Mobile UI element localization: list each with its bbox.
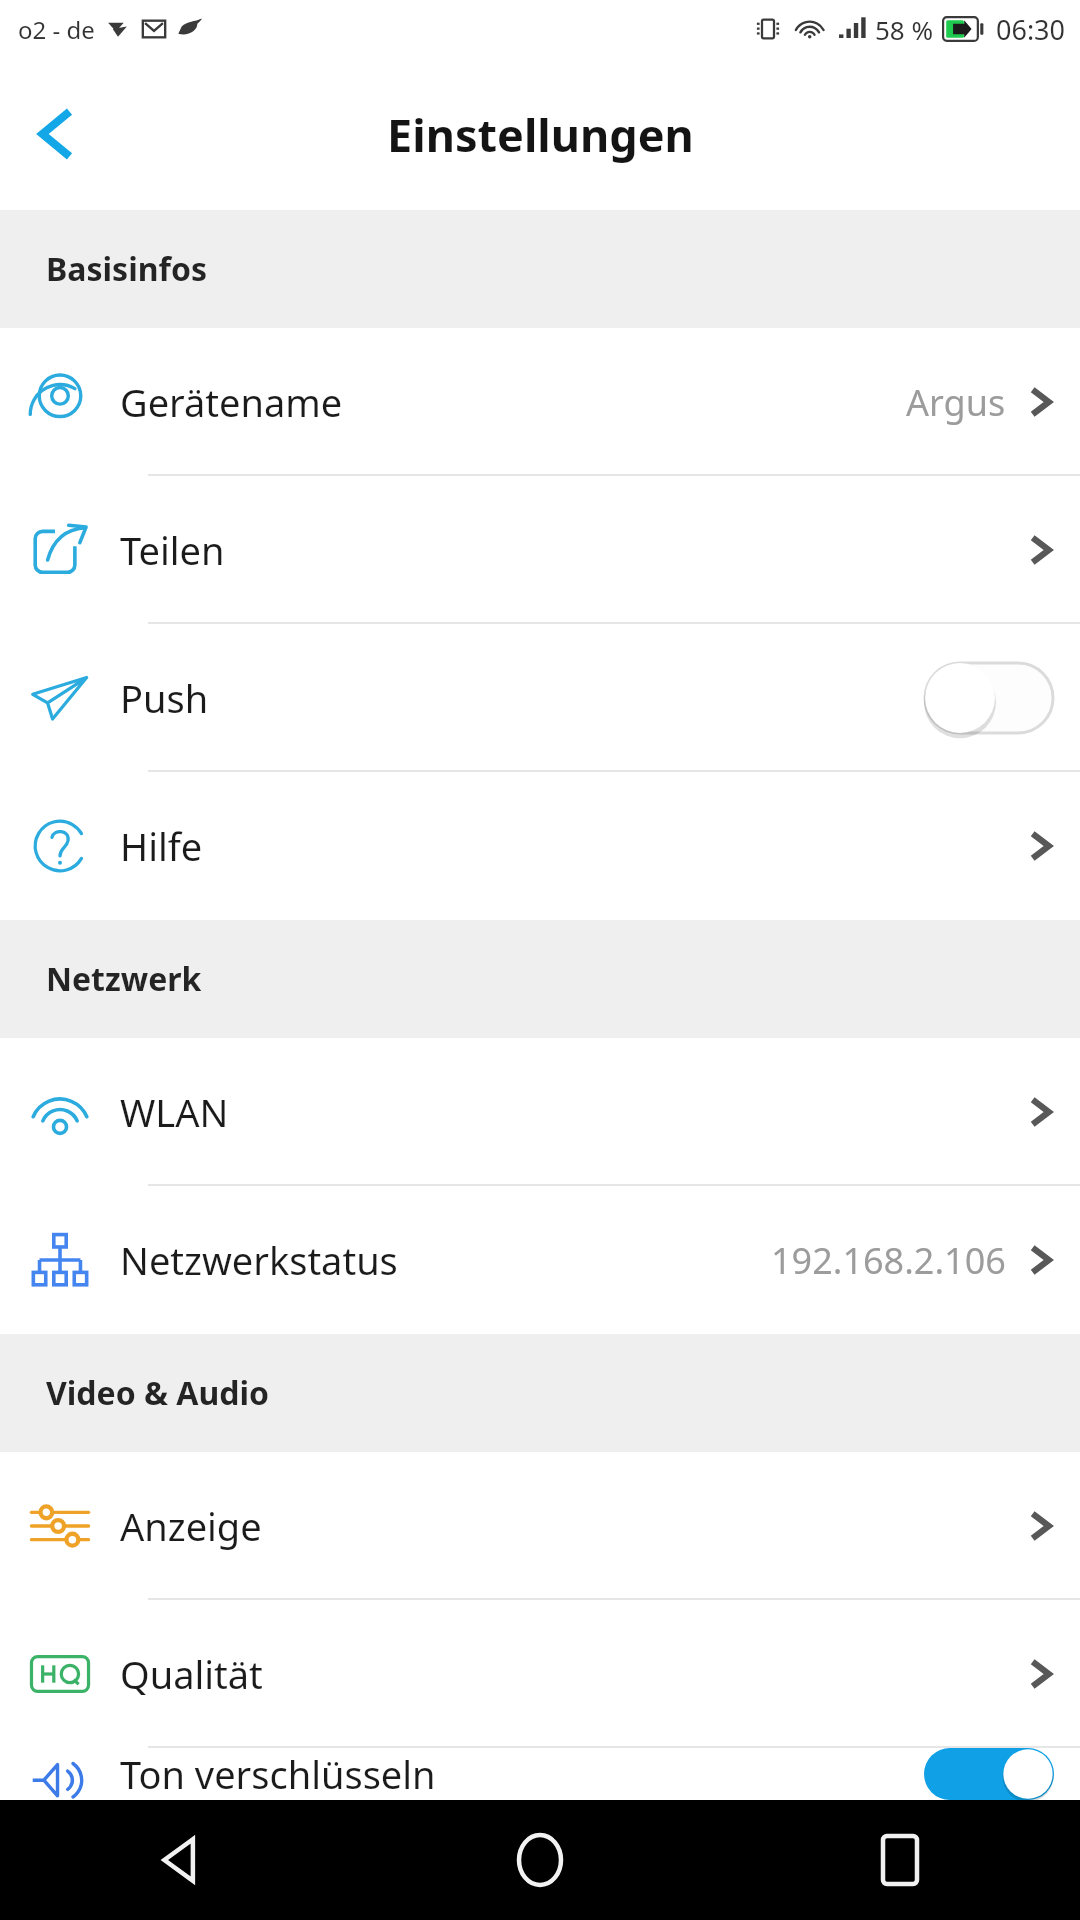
staticText: Hilfe <box>120 820 203 872</box>
button[interactable]: Hilfe <box>0 772 1080 920</box>
staticText: 192.168.2.106 <box>771 1236 1006 1285</box>
button[interactable]: Ton verschlüsseln <box>0 1748 1080 1800</box>
button[interactable]: Startbildschirm <box>360 1800 720 1920</box>
staticText: Teilen <box>120 524 225 576</box>
button[interactable]: Qualität <box>0 1600 1080 1748</box>
button[interactable]: Teilen <box>0 476 1080 624</box>
button[interactable]: Push <box>0 624 1080 772</box>
staticText: Netzwerk <box>46 957 202 1001</box>
staticText: Argus <box>906 378 1006 427</box>
staticText: Push <box>120 672 209 724</box>
staticText: 06:30 <box>996 11 1066 48</box>
button[interactable]: Zurück <box>0 1800 360 1920</box>
button[interactable]: Zurück <box>8 86 104 182</box>
button[interactable]: Anzeige <box>0 1452 1080 1600</box>
button[interactable]: Netzwerkstatus <box>0 1186 1080 1334</box>
button[interactable]: WLAN <box>0 1038 1080 1186</box>
staticText: Anzeige <box>120 1500 262 1552</box>
button[interactable]: Letzte Apps <box>720 1800 1080 1920</box>
button[interactable]: Gerätename <box>0 328 1080 476</box>
staticText: WLAN <box>120 1086 229 1138</box>
staticText: Qualität <box>120 1648 263 1700</box>
staticText: Einstellungen <box>387 104 694 165</box>
staticText: Netzwerkstatus <box>120 1234 398 1286</box>
staticText: o2 - de <box>18 13 95 46</box>
staticText: 58 % <box>875 12 934 47</box>
staticText: Gerätename <box>120 376 343 428</box>
staticText: Video & Audio <box>46 1371 270 1415</box>
staticText: Ton verschlüsseln <box>120 1748 436 1800</box>
staticText: Basisinfos <box>46 247 207 291</box>
